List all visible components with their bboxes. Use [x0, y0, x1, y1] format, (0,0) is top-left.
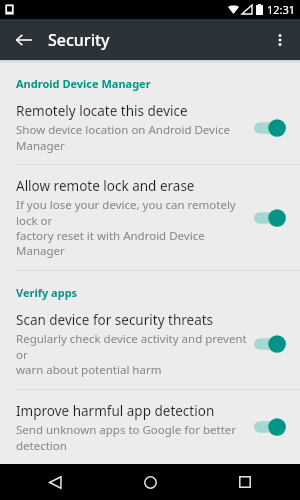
staticText: Send unknown apps to Google for better d… [16, 422, 237, 452]
staticText: Android Device Manager [16, 76, 151, 91]
button[interactable]: Improve harmful app detection [0, 390, 300, 464]
staticText: Improve harmful app detection [16, 402, 215, 420]
button[interactable]: Scan device for security threats [0, 302, 300, 389]
staticText: Show device location on Android Device M… [16, 122, 230, 153]
staticText: If you lose your device, you can remotel… [16, 197, 248, 258]
staticText: Remotely locate this device [16, 102, 188, 120]
staticText: Verify apps [16, 285, 78, 300]
staticText: 12:31 [267, 2, 296, 17]
button[interactable]: Toggle [254, 117, 290, 139]
button[interactable]: Toggle [254, 333, 290, 355]
staticText: Regularly check device activity and prev… [16, 331, 248, 377]
button[interactable]: Toggle [254, 207, 290, 229]
button[interactable]: Back [8, 24, 40, 56]
button[interactable]: Remotely locate this device [0, 93, 300, 164]
staticText: Allow remote lock and erase [16, 177, 195, 195]
button[interactable]: Toggle [254, 416, 290, 438]
button[interactable]: Allow remote lock and erase [0, 165, 300, 270]
staticText: Security [48, 29, 110, 51]
button[interactable]: More options [264, 24, 296, 56]
staticText: Scan device for security threats [16, 311, 214, 329]
button[interactable]: Back [40, 467, 70, 497]
button[interactable]: Recent apps [230, 467, 260, 497]
button[interactable]: Home [135, 467, 165, 497]
